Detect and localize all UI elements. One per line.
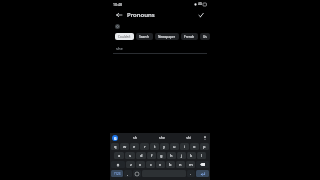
button[interactable]: e <box>130 143 139 150</box>
staticText: Newspaper <box>158 35 176 39</box>
button[interactable]: p <box>200 143 209 150</box>
button[interactable]: n <box>176 161 185 168</box>
button[interactable]: m <box>186 161 195 168</box>
button[interactable]: u <box>170 143 179 150</box>
button[interactable]: r <box>140 143 149 150</box>
button[interactable]: h <box>167 152 176 159</box>
staticText: f <box>151 153 153 158</box>
button[interactable]: o <box>190 143 199 150</box>
staticText: G <box>114 136 117 141</box>
staticText: b <box>169 162 172 167</box>
button[interactable]: Enter <box>196 170 209 177</box>
button[interactable]: , <box>124 170 132 177</box>
button[interactable]: Search <box>136 33 153 40</box>
button[interactable]: j <box>177 152 186 159</box>
staticText: s <box>129 153 131 158</box>
staticText: o <box>193 144 196 149</box>
button[interactable]: z <box>126 161 135 168</box>
button[interactable]: y <box>160 143 169 150</box>
staticText: z <box>130 162 132 167</box>
staticText: a <box>118 153 121 158</box>
staticText: u <box>173 144 176 149</box>
button[interactable]: k <box>187 152 196 159</box>
staticText: she <box>116 46 123 51</box>
button[interactable]: shi <box>175 135 202 140</box>
button[interactable]: ?123 <box>111 170 123 177</box>
button[interactable]: Backspace <box>196 161 209 168</box>
button[interactable]: b <box>166 161 175 168</box>
staticText: k <box>190 153 193 158</box>
button[interactable]: French <box>181 33 198 40</box>
button[interactable]: . <box>187 170 195 177</box>
staticText: q <box>114 144 117 149</box>
button[interactable]: i <box>180 143 189 150</box>
button[interactable]: Voice input <box>202 135 208 141</box>
button[interactable]: Couldn't <box>115 33 134 40</box>
button[interactable]: g <box>157 152 166 159</box>
staticText: l <box>201 153 203 158</box>
button[interactable]: Newspaper <box>155 33 179 40</box>
button[interactable]: t <box>150 143 159 150</box>
staticText: t <box>154 144 156 149</box>
staticText: c <box>150 162 152 167</box>
staticText: French <box>184 35 195 39</box>
staticText: n <box>179 162 182 167</box>
staticText: Pronouns <box>127 11 155 19</box>
staticText: 10:48 <box>113 2 122 7</box>
button[interactable]: Use <box>200 33 210 40</box>
staticText: w <box>123 144 127 149</box>
staticText: y <box>163 144 166 149</box>
button[interactable]: x <box>136 161 145 168</box>
button[interactable]: sh <box>121 135 148 140</box>
button[interactable]: Emoji <box>133 170 141 177</box>
staticText: j <box>181 153 183 158</box>
button[interactable]: she <box>148 135 175 140</box>
button[interactable]: a <box>114 152 124 159</box>
staticText: sh <box>133 135 137 140</box>
button[interactable]: l <box>197 152 206 159</box>
staticText: shi <box>186 135 191 140</box>
button[interactable]: c <box>146 161 155 168</box>
staticText: v <box>159 162 162 167</box>
staticText: e <box>133 144 136 149</box>
staticText: Use <box>203 35 207 39</box>
staticText: ?123 <box>114 172 121 176</box>
staticText: r <box>144 144 146 149</box>
staticText: h <box>170 153 173 158</box>
button[interactable]: Shift <box>111 161 125 168</box>
staticText: Couldn't <box>118 35 131 39</box>
button[interactable]: w <box>120 143 129 150</box>
button[interactable]: d <box>136 152 146 159</box>
staticText: p <box>203 144 206 149</box>
staticText: i <box>184 144 186 149</box>
staticText: d <box>140 153 143 158</box>
staticText: m <box>189 162 193 167</box>
staticText: . <box>190 171 192 176</box>
button[interactable]: Google <box>112 135 118 141</box>
staticText: , <box>127 171 129 176</box>
staticText: g <box>160 153 163 158</box>
staticText: Search <box>139 35 150 39</box>
button[interactable]: f <box>147 152 156 159</box>
button[interactable]: Save <box>196 10 206 20</box>
staticText: 4G <box>198 2 202 6</box>
staticText: x <box>139 162 142 167</box>
button[interactable]: Back <box>114 10 124 20</box>
button[interactable]: s <box>125 152 135 159</box>
button[interactable]: v <box>156 161 165 168</box>
button[interactable]: q <box>111 143 119 150</box>
staticText: she <box>159 135 165 140</box>
